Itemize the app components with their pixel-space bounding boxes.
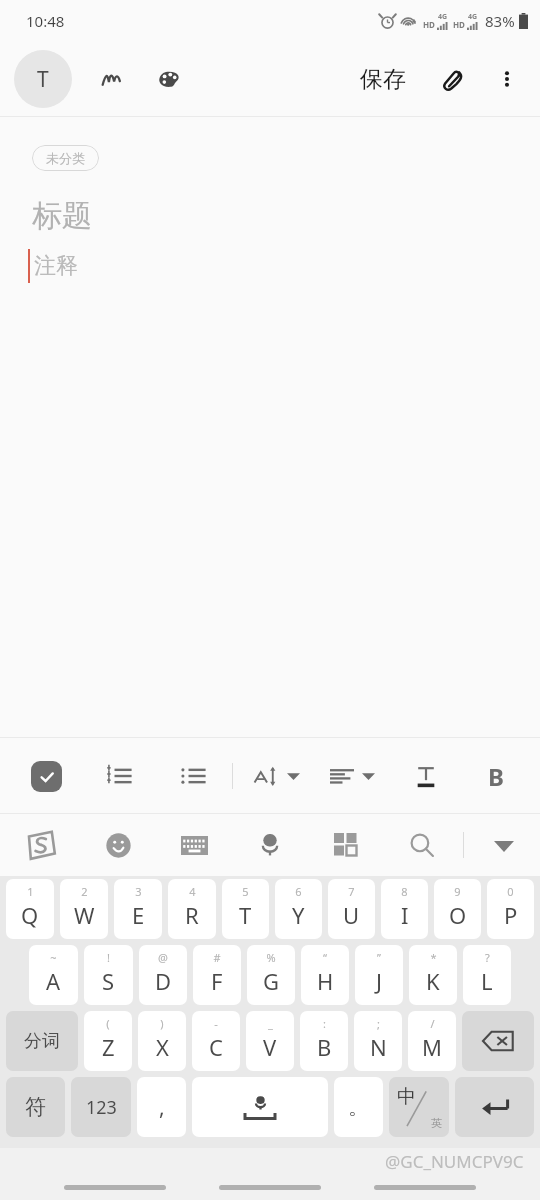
staticText: N: [370, 1032, 387, 1062]
button[interactable]: “: [301, 945, 349, 1005]
staticText: V: [263, 1032, 277, 1062]
staticText: D: [155, 966, 172, 996]
staticText: Z: [102, 1032, 115, 1062]
staticText: 3: [135, 884, 142, 899]
staticText: @: [158, 950, 168, 965]
staticText: 83%: [485, 11, 515, 31]
button[interactable]: ,: [137, 1077, 186, 1137]
button[interactable]: Navigation button: [374, 1185, 476, 1190]
button[interactable]: Enter: [455, 1077, 534, 1137]
staticText: W: [74, 900, 95, 930]
button[interactable]: /: [408, 1011, 456, 1071]
button[interactable]: 保存: [352, 59, 414, 100]
staticText: HD: [453, 19, 465, 30]
staticText: 4G: [468, 12, 478, 22]
button[interactable]: More options: [484, 56, 530, 102]
button[interactable]: (: [84, 1011, 132, 1071]
button[interactable]: More tools: [324, 823, 368, 867]
button[interactable]: 123: [71, 1077, 131, 1137]
button[interactable]: _: [246, 1011, 294, 1071]
staticText: J: [376, 966, 383, 996]
button[interactable]: [326, 760, 379, 792]
staticText: 8: [401, 884, 408, 899]
staticText: R: [185, 900, 199, 930]
button[interactable]: Draw: [88, 56, 134, 102]
button[interactable]: !: [84, 945, 133, 1005]
button[interactable]: [249, 759, 304, 793]
staticText: 4G: [438, 12, 448, 22]
staticText: 4: [189, 884, 196, 899]
staticText: ,: [159, 1093, 165, 1122]
button[interactable]: Text mode: [14, 50, 72, 108]
button[interactable]: 6: [275, 879, 322, 939]
staticText: *: [430, 950, 437, 965]
button[interactable]: ?: [463, 945, 511, 1005]
staticText: _: [268, 1016, 273, 1031]
staticText: C: [209, 1032, 223, 1062]
staticText: /: [430, 1016, 435, 1031]
button[interactable]: 8: [381, 879, 428, 939]
staticText: -: [214, 1016, 218, 1031]
button[interactable]: ): [138, 1011, 186, 1071]
button[interactable]: Navigation button: [219, 1185, 321, 1190]
staticText: E: [132, 900, 145, 930]
button[interactable]: Bold: [475, 755, 517, 797]
button[interactable]: Emoji: [96, 823, 140, 867]
button[interactable]: 未分类: [32, 145, 99, 171]
staticText: @GC_NUMCPV9C: [385, 1150, 524, 1173]
staticText: 6: [295, 884, 302, 899]
button[interactable]: Hide keyboard: [482, 823, 526, 867]
button[interactable]: 0: [487, 879, 534, 939]
button[interactable]: Text color: [405, 755, 447, 797]
button[interactable]: Sogou input: [18, 822, 64, 868]
button[interactable]: 9: [434, 879, 481, 939]
button[interactable]: Keyboard layout: [172, 823, 216, 867]
button[interactable]: -: [192, 1011, 240, 1071]
staticText: !: [107, 950, 110, 965]
button[interactable]: Attach: [430, 56, 476, 102]
button[interactable]: :: [300, 1011, 348, 1071]
staticText: T: [239, 900, 252, 930]
button[interactable]: Backspace: [462, 1011, 534, 1071]
button[interactable]: @: [139, 945, 187, 1005]
button[interactable]: 5: [222, 879, 269, 939]
button[interactable]: ”: [355, 945, 403, 1005]
button[interactable]: Search: [400, 823, 444, 867]
staticText: K: [426, 966, 440, 996]
staticText: S: [102, 966, 115, 996]
staticText: 标题: [32, 197, 92, 235]
button[interactable]: Navigation button: [64, 1185, 166, 1190]
staticText: :: [323, 1016, 326, 1031]
button[interactable]: 7: [328, 879, 375, 939]
staticText: 保存: [360, 65, 406, 94]
button[interactable]: Numbered list: [98, 755, 140, 797]
button[interactable]: 3: [114, 879, 162, 939]
staticText: ”: [377, 950, 381, 965]
staticText: HD: [423, 19, 435, 30]
button[interactable]: Checklist: [26, 756, 66, 796]
button[interactable]: 分词: [6, 1011, 78, 1071]
button[interactable]: %: [247, 945, 295, 1005]
button[interactable]: 4: [168, 879, 216, 939]
button[interactable]: #: [193, 945, 241, 1005]
staticText: X: [156, 1032, 169, 1062]
staticText: B: [317, 1032, 332, 1062]
button[interactable]: Bulleted list: [172, 755, 214, 797]
button[interactable]: ;: [354, 1011, 402, 1071]
button[interactable]: *: [409, 945, 457, 1005]
staticText: 2: [81, 884, 88, 899]
staticText: ~: [50, 950, 57, 965]
button[interactable]: 2: [60, 879, 108, 939]
staticText: 7: [348, 884, 355, 899]
button[interactable]: Palette: [146, 56, 192, 102]
staticText: “: [323, 950, 327, 965]
staticText: I: [401, 900, 409, 930]
button[interactable]: 符: [6, 1077, 65, 1137]
button[interactable]: Chinese English toggle: [389, 1077, 449, 1137]
button[interactable]: 。: [334, 1077, 383, 1137]
button[interactable]: 1: [6, 879, 54, 939]
button[interactable]: ~: [29, 945, 78, 1005]
staticText: O: [449, 900, 467, 930]
button[interactable]: Voice input: [248, 823, 292, 867]
button[interactable]: Space: [192, 1077, 328, 1137]
